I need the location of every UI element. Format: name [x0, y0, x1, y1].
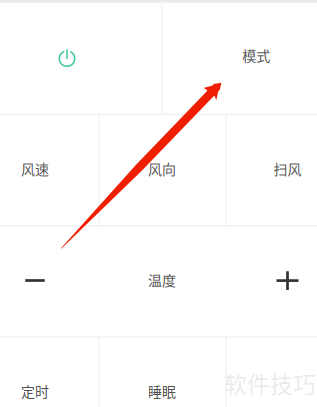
button[interactable]: 睡眠: [98, 336, 225, 407]
staticText: 温度: [148, 269, 176, 290]
button[interactable]: 定时: [0, 336, 98, 407]
button[interactable]: 风向: [98, 114, 225, 225]
button[interactable]: Power: [0, 2, 161, 114]
staticText: 风速: [21, 158, 49, 179]
staticText: 风向: [148, 158, 176, 179]
button[interactable]: 风速: [0, 114, 98, 225]
button[interactable]: Increase temperature: [225, 225, 316, 336]
button[interactable]: Decrease temperature: [0, 225, 98, 336]
button[interactable]: 模式: [161, 2, 316, 114]
button[interactable]: 扫风: [225, 114, 316, 225]
staticText: 扫风: [273, 158, 301, 179]
staticText: 定时: [21, 381, 49, 401]
staticText: 睡眠: [148, 381, 176, 401]
staticText: 模式: [242, 45, 270, 65]
staticText: 软件技巧: [224, 367, 316, 400]
button[interactable]: 温度: [98, 225, 225, 336]
